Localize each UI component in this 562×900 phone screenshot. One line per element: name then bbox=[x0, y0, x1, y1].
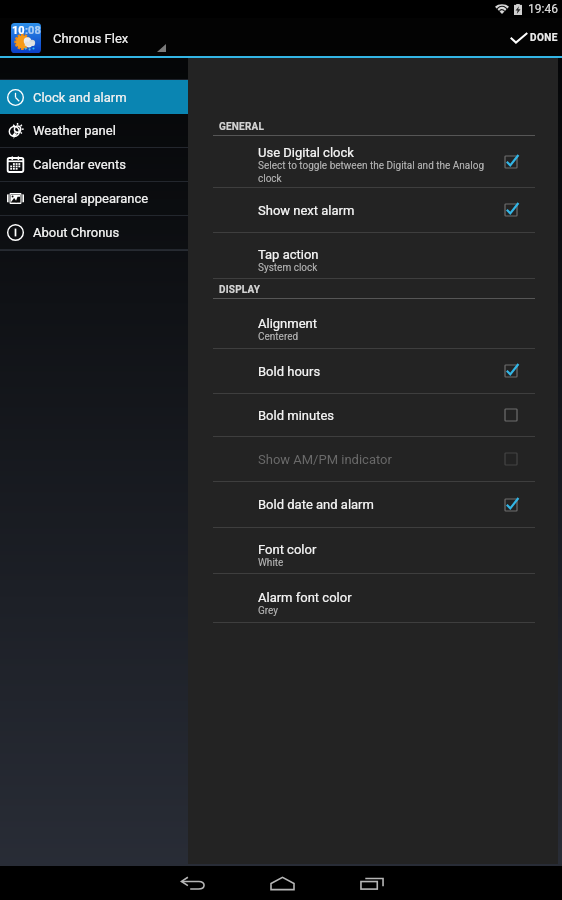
staticText: Use Digital clock bbox=[258, 145, 354, 160]
staticText: 19:46 bbox=[528, 2, 558, 16]
button[interactable]: Alarm font color bbox=[213, 574, 535, 622]
staticText: Bold date and alarm bbox=[258, 497, 374, 512]
button[interactable]: Alignment bbox=[213, 299, 535, 348]
button[interactable]: Font color bbox=[213, 528, 535, 573]
button[interactable]: Bold minutes bbox=[213, 394, 535, 436]
button[interactable]: Recents bbox=[327, 866, 417, 900]
staticText: Alarm font color bbox=[258, 590, 352, 605]
staticText: About Chronus bbox=[33, 225, 120, 240]
button[interactable]: Home bbox=[237, 866, 327, 900]
button[interactable]: Show AM/PM indicator bbox=[213, 437, 535, 481]
staticText: 10 bbox=[12, 24, 25, 37]
staticText: Grey bbox=[258, 605, 279, 617]
staticText: Show next alarm bbox=[258, 203, 355, 218]
button[interactable]: General appearance bbox=[0, 182, 188, 215]
staticText: Alignment bbox=[258, 316, 318, 331]
staticText: Bold hours bbox=[258, 364, 321, 379]
button[interactable]: Use Digital clock bbox=[213, 136, 535, 187]
button[interactable]: Bold date and alarm bbox=[213, 482, 535, 527]
staticText: Clock and alarm bbox=[33, 90, 127, 105]
button[interactable]: Weather panel bbox=[0, 114, 188, 147]
button[interactable]: Tap action bbox=[213, 233, 535, 278]
staticText: Show AM/PM indicator bbox=[258, 452, 392, 467]
staticText: General appearance bbox=[33, 191, 149, 206]
staticText: Bold minutes bbox=[258, 408, 334, 423]
staticText: DISPLAY bbox=[219, 284, 261, 296]
staticText: System clock bbox=[258, 262, 318, 274]
button[interactable]: DONE bbox=[498, 18, 562, 58]
staticText: GENERAL bbox=[219, 121, 265, 133]
staticText: Chronus Flex bbox=[53, 31, 129, 46]
staticText: :08 bbox=[25, 24, 41, 37]
staticText: Font color bbox=[258, 542, 317, 557]
staticText: Weather panel bbox=[33, 123, 116, 138]
button[interactable]: About Chronus bbox=[0, 216, 188, 249]
button[interactable]: Bold hours bbox=[213, 349, 535, 393]
button[interactable]: Show next alarm bbox=[213, 188, 535, 232]
staticText: White bbox=[258, 557, 284, 569]
button[interactable]: Back bbox=[147, 866, 237, 900]
button[interactable]: Calendar events bbox=[0, 148, 188, 181]
button[interactable]: Clock and alarm bbox=[0, 80, 188, 114]
staticText: Calendar events bbox=[33, 157, 126, 172]
staticText: Centered bbox=[258, 331, 299, 343]
staticText: Select to toggle between the Digital and… bbox=[258, 160, 497, 185]
staticText: DONE bbox=[530, 32, 558, 44]
staticText: Tap action bbox=[258, 247, 319, 262]
